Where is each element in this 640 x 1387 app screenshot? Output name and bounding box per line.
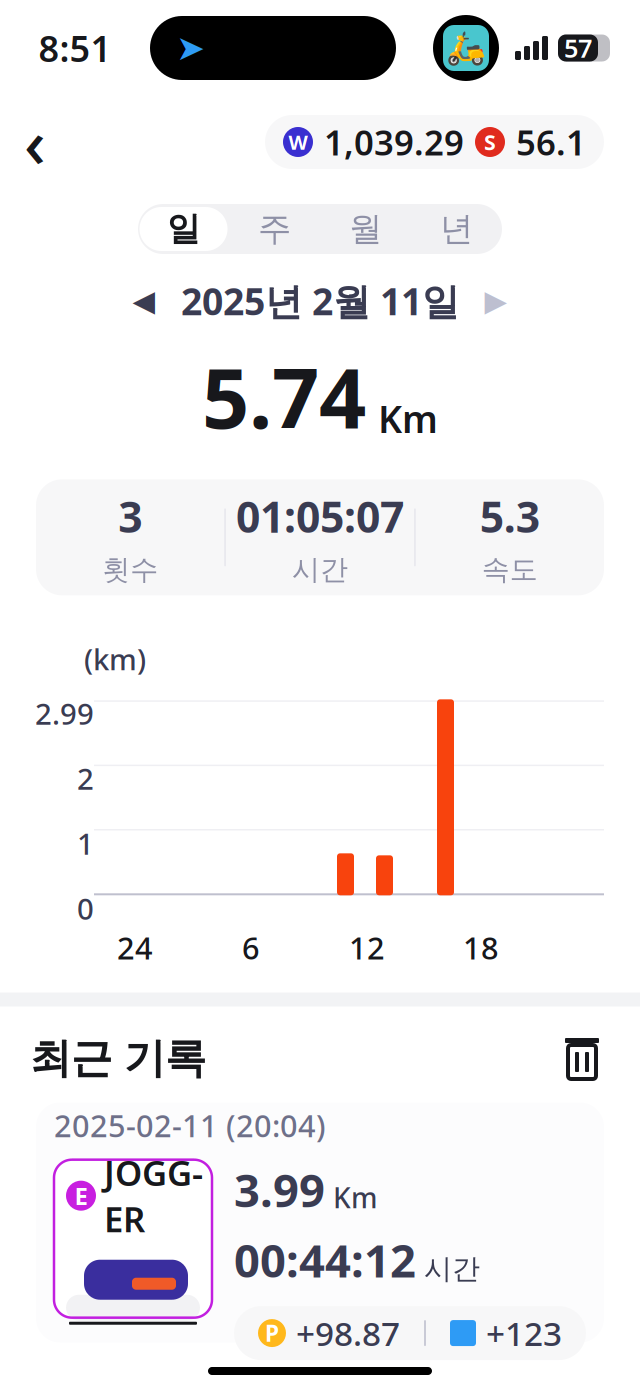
staticText: 24 (117, 927, 153, 968)
button[interactable]: 주 (229, 205, 320, 253)
staticText: 2025-02-11 (20:04) (54, 1105, 326, 1146)
staticText: 시간 (424, 1252, 480, 1286)
staticText: 2.99 (35, 694, 94, 733)
staticText: ‹ (24, 98, 46, 186)
staticText: 시간 (292, 552, 348, 587)
button[interactable]: Next day (473, 279, 519, 323)
staticText: 횟수 (102, 552, 158, 587)
staticText: 속도 (482, 552, 538, 587)
staticText: 0 (77, 889, 94, 928)
staticText: 주 (258, 208, 291, 249)
staticText: 56.1 (516, 119, 586, 165)
staticText: +123 (486, 1311, 562, 1355)
staticText: 2025년 2월 11일 (181, 276, 459, 326)
staticText: (km) (84, 639, 146, 678)
staticText: P (265, 1318, 279, 1348)
staticText: 01:05:07 (236, 488, 404, 544)
staticText: 8:51 (38, 24, 111, 72)
button[interactable]: Previous day (121, 279, 167, 323)
staticText: ➤ (176, 28, 205, 68)
staticText: 00:44:12 (234, 1230, 416, 1290)
staticText: ▶ (484, 284, 507, 317)
staticText: +98.87 (296, 1311, 400, 1355)
staticText: Km (378, 394, 438, 443)
staticText: E (74, 1180, 87, 1212)
staticText: 최근 기록 (30, 1033, 206, 1084)
staticText: 1 (77, 824, 94, 863)
button[interactable]: 일 (138, 205, 229, 253)
button[interactable]: Back (0, 110, 70, 174)
staticText: 2 (77, 759, 94, 798)
staticText: JOGGER (104, 1150, 203, 1242)
staticText: S (484, 128, 496, 156)
button[interactable]: 월 (320, 205, 411, 253)
staticText: 57 (564, 31, 592, 65)
staticText: Km (333, 1179, 378, 1216)
button[interactable]: 2025-02-11 (20:04) (36, 1102, 604, 1342)
staticText: 🛵 (446, 30, 486, 66)
button[interactable]: W (265, 115, 604, 169)
staticText: 18 (463, 927, 499, 968)
staticText: 3 (118, 488, 142, 544)
button[interactable]: Delete all records (554, 1030, 610, 1086)
staticText: 일 (167, 208, 200, 249)
staticText: 6 (242, 927, 260, 968)
staticText: W (288, 129, 307, 155)
button[interactable]: 년 (411, 205, 502, 253)
staticText: 3.99 (234, 1160, 325, 1220)
staticText: 월 (349, 208, 382, 249)
staticText: 12 (349, 927, 385, 968)
staticText: 5.74 (202, 342, 366, 451)
staticText: 1,039.29 (324, 119, 464, 165)
staticText: ◀ (132, 284, 155, 317)
staticText: 5.3 (480, 488, 540, 544)
staticText: 년 (440, 208, 473, 249)
